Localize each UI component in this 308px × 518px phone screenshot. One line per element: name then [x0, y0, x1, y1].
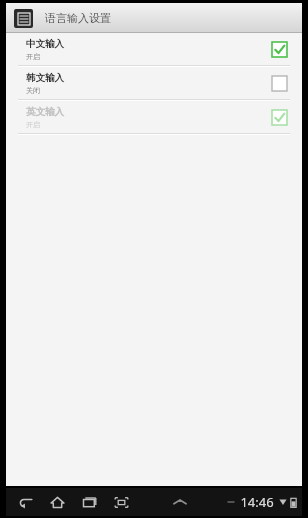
button[interactable]: Recents [76, 489, 102, 515]
button[interactable]: Screenshot [108, 489, 134, 515]
staticText: 关闭 [26, 86, 40, 95]
other: 语言输入设置 [14, 9, 33, 28]
button[interactable]: Notifications [167, 489, 193, 515]
staticText: 开启 [26, 120, 40, 129]
staticText: 中文输入 [26, 38, 64, 50]
button[interactable]: 已选中 [270, 108, 288, 126]
staticText: 14:46 [240, 493, 274, 511]
staticText: 语言输入设置 [45, 11, 111, 25]
button[interactable]: Home [44, 489, 70, 515]
staticText: 英文输入 [26, 106, 64, 118]
button[interactable]: 未选中 [270, 74, 288, 92]
staticText: 开启 [26, 52, 40, 61]
button[interactable]: 中文输入 [6, 33, 302, 65]
button[interactable]: 英文输入 [6, 101, 302, 133]
button[interactable]: Back [12, 489, 38, 515]
button[interactable]: 韩文输入 [6, 67, 302, 99]
staticText: 韩文输入 [26, 72, 64, 84]
button[interactable]: 已选中 [270, 40, 288, 58]
